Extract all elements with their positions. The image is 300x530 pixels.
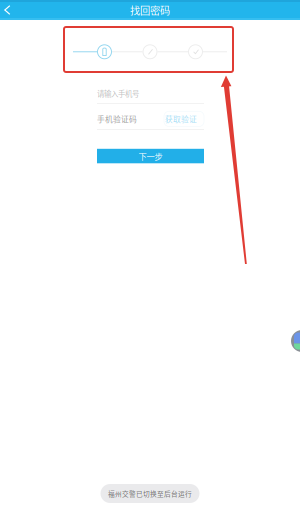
staticText: 获取验证 xyxy=(165,113,197,124)
button[interactable]: Back xyxy=(0,1,17,19)
button[interactable]: 获取验证 xyxy=(164,111,204,126)
staticText: 请输入手机号 xyxy=(97,88,139,99)
staticText: 找回密码 xyxy=(130,3,170,17)
staticText: 福州交警已切换至后台运行 xyxy=(108,489,192,498)
staticText: 手机验证码 xyxy=(97,113,137,124)
staticText: 下一步 xyxy=(138,150,162,162)
button[interactable]: 下一步 xyxy=(97,149,204,163)
